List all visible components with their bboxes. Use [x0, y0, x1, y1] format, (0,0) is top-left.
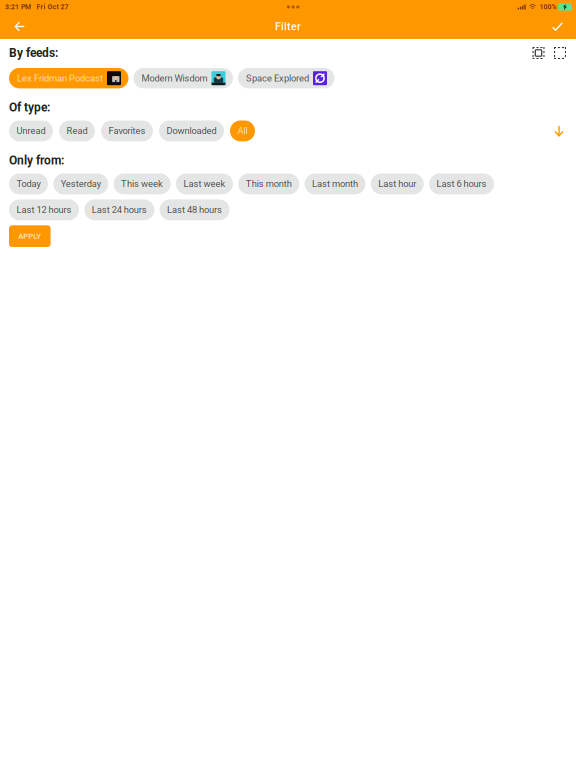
staticText: APPLY — [18, 232, 41, 241]
staticText: Read — [66, 125, 87, 136]
button[interactable]: APPLY — [9, 225, 51, 247]
button[interactable]: Unread — [9, 120, 53, 141]
staticText: Space Explored — [246, 73, 309, 84]
button[interactable]: Yesterday — [53, 173, 108, 194]
button[interactable]: Last 6 hours — [429, 173, 494, 194]
staticText: Last month — [312, 178, 358, 189]
staticText: Yesterday — [61, 178, 101, 189]
staticText: Fri Oct 27 — [36, 3, 68, 11]
staticText: This month — [246, 178, 292, 189]
staticText: Filter — [275, 20, 301, 33]
staticText: Last hour — [378, 178, 416, 189]
staticText: Modern Wisdom — [141, 73, 207, 84]
staticText: Favorites — [108, 125, 145, 136]
button[interactable]: Last 12 hours — [9, 199, 79, 220]
staticText: Last 48 hours — [167, 204, 222, 215]
button[interactable]: Modern Wisdom — [133, 68, 233, 88]
button[interactable]: Sort order — [551, 122, 567, 139]
staticText: Last week — [183, 178, 225, 189]
button[interactable]: Last 48 hours — [160, 199, 230, 220]
button[interactable]: Deselect all feeds — [550, 44, 567, 62]
staticText: Last 12 hours — [16, 204, 71, 215]
button[interactable]: Last week — [176, 173, 233, 194]
staticText: Today — [16, 178, 40, 189]
staticText: 100% — [539, 3, 556, 11]
button[interactable]: Select all feeds — [528, 44, 550, 62]
button[interactable]: All — [230, 120, 255, 141]
button[interactable]: Back — [0, 15, 38, 38]
staticText: Last 6 hours — [437, 178, 487, 189]
staticText: Only from: — [9, 153, 64, 167]
button[interactable]: Space Explored — [238, 68, 334, 88]
staticText: All — [237, 125, 247, 136]
button[interactable]: Today — [9, 173, 48, 194]
button[interactable]: Downloaded — [159, 120, 224, 141]
button[interactable]: This month — [238, 173, 299, 194]
staticText: By feeds: — [9, 46, 58, 60]
button[interactable]: This week — [114, 173, 171, 194]
staticText: Lex Fridman Podcast — [17, 73, 103, 84]
button[interactable]: Last 24 hours — [84, 199, 154, 220]
staticText: Of type: — [9, 100, 50, 114]
button[interactable]: Last month — [304, 173, 365, 194]
staticText: 3:21 PM — [5, 3, 31, 11]
staticText: Last 24 hours — [92, 204, 147, 215]
button[interactable]: Last hour — [371, 173, 424, 194]
button[interactable]: Read — [59, 120, 95, 141]
button[interactable]: Lex Fridman Podcast — [9, 68, 128, 88]
button[interactable]: Apply filter — [539, 16, 576, 37]
staticText: Downloaded — [166, 125, 216, 136]
staticText: This week — [121, 178, 163, 189]
staticText: Unread — [16, 125, 45, 136]
button[interactable]: Favorites — [101, 120, 153, 141]
